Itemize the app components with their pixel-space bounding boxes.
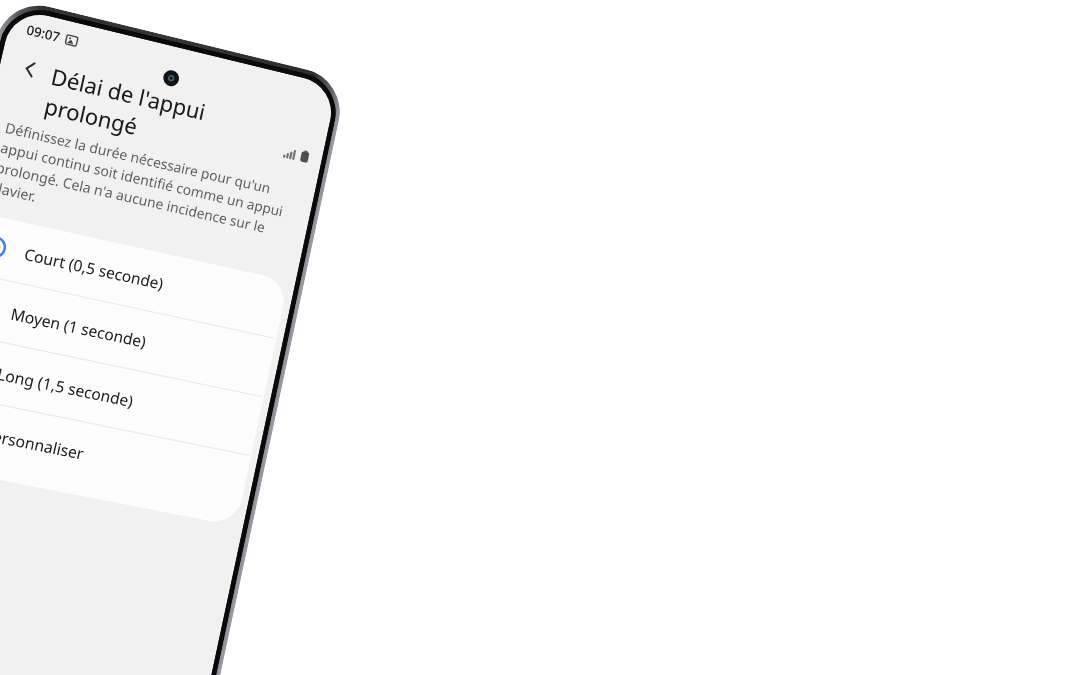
button[interactable]: Court (0,5 seconde) — [0, 211, 289, 338]
button[interactable]: Personnaliser — [0, 392, 251, 514]
staticText: Long (1,5 seconde) — [0, 362, 136, 411]
staticText: Personnaliser — [0, 423, 86, 464]
button[interactable]: Long (1,5 seconde) — [0, 331, 264, 455]
staticText: 09:07 — [25, 20, 62, 46]
button[interactable]: Moyen (1 seconde) — [0, 271, 276, 397]
staticText: Court (0,5 seconde) — [22, 243, 165, 294]
staticText: Délai de l'appui prolongé — [42, 61, 290, 174]
staticText: Moyen (1 seconde) — [9, 302, 149, 352]
button[interactable]: Back — [8, 47, 52, 91]
staticText: Définissez la durée nécessaire pour qu'u… — [0, 118, 298, 261]
